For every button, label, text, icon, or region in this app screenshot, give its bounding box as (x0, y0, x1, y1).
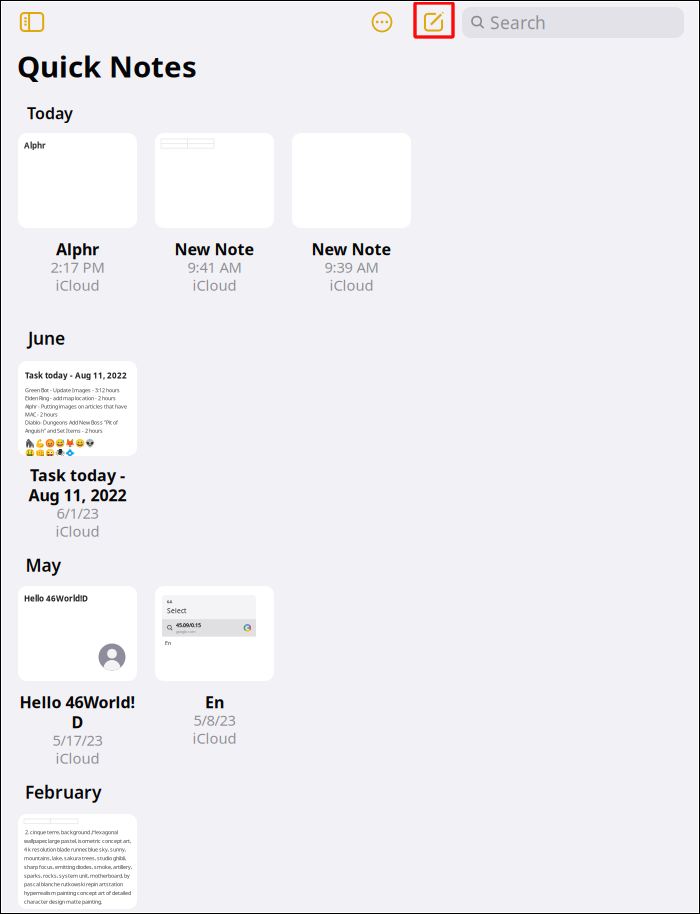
button[interactable]: Hello 46World!D (18, 586, 137, 681)
button[interactable]: Task today - Aug 11, 2022 (18, 361, 137, 456)
button[interactable]: New Note (412, 0, 456, 40)
staticText: iCloud (192, 275, 236, 295)
staticText: 2:17 PM (50, 257, 104, 277)
staticText: iCloud (192, 728, 236, 748)
staticText: sparks, rocks, system unit, motherboard,… (24, 872, 130, 879)
staticText: Alphr - Putting images on articles that … (25, 403, 127, 410)
staticText: Today (27, 102, 73, 124)
staticText: New Note (311, 238, 391, 260)
button[interactable]: 2. cinque terre, background ,Hexagonal (18, 814, 137, 909)
staticText: En (205, 691, 224, 713)
button[interactable]: Show Sidebar (12, 3, 52, 41)
staticText: Green Bot - Update Images - 3:12 hours (25, 387, 120, 394)
button[interactable]: Alphr (18, 133, 137, 228)
staticText: D (71, 711, 83, 733)
staticText: 6/1/23 (56, 503, 98, 523)
staticText: February (25, 780, 101, 803)
staticText: Hello 46World! (19, 691, 135, 713)
staticText: En (165, 640, 171, 647)
staticText: Task today - Aug 11, 2022 (25, 370, 127, 381)
staticText: character design matte painting. (24, 898, 102, 905)
button[interactable]: Task today - (2, 466, 152, 538)
staticText: Aug 11, 2022 (28, 484, 126, 506)
button[interactable]: New Note (276, 240, 426, 294)
staticText: Elden Ring - add map location - 2 hours (25, 395, 116, 402)
staticText: Diablo- Dungeons Add New Boss "Pit of (25, 419, 118, 426)
button[interactable]: En (139, 693, 289, 747)
staticText: 🤑👊😜🕷💠 (25, 448, 75, 457)
staticText: iCloud (55, 748, 99, 768)
staticText: hyperrealism painting concept art of det… (24, 889, 131, 896)
staticText: Quick Notes (17, 46, 197, 85)
staticText: iCloud (329, 275, 373, 295)
staticText: sharp focus, emitting diodes, smoke, art… (24, 863, 132, 870)
button[interactable]: Hello 46World! (2, 693, 152, 765)
staticText: Alphr (56, 238, 99, 260)
staticText: 5/8/23 (193, 710, 235, 730)
button[interactable]: Search (462, 7, 684, 38)
button[interactable]: More (362, 2, 401, 41)
staticText: 9:39 AM (324, 257, 378, 277)
staticText: Search (490, 11, 546, 34)
staticText: 🦍💪😡😅🦊😄👽 (25, 439, 95, 448)
staticText: wallpaper, large pastel, isometric conce… (24, 837, 131, 844)
button[interactable]: Alphr (2, 240, 152, 294)
staticText: 2. cinque terre, background ,Hexagonal (24, 829, 118, 836)
staticText: Select (167, 606, 186, 615)
staticText: Anguish" and Set Items - 2 hours (25, 427, 103, 434)
staticText: iCloud (55, 275, 99, 295)
button[interactable]: 6-6 (155, 586, 274, 681)
staticText: Task today - (30, 464, 125, 486)
staticText: pascal blanche rutkowski repin artstatio… (24, 881, 123, 888)
staticText: May (25, 553, 60, 576)
staticText: 45.09/0.15 (176, 622, 201, 629)
staticText: 6-6 (167, 599, 172, 604)
button[interactable]: New Note (139, 240, 289, 294)
staticText: 5/17/23 (52, 730, 102, 750)
staticText: iCloud (55, 521, 99, 541)
staticText: 4 k resolution blade runner, blue sky, s… (24, 846, 126, 853)
staticText: mountains, lake, sakura trees, studio gh… (24, 855, 126, 862)
staticText: 9:41 AM (187, 257, 241, 277)
staticText: New Note (174, 238, 254, 260)
staticText: google.com (176, 629, 196, 634)
staticText: MAC - 2 hours (25, 411, 58, 418)
staticText: June (28, 326, 65, 349)
staticText: Alphr (24, 140, 46, 151)
staticText: Hello 46World!D (24, 593, 88, 604)
